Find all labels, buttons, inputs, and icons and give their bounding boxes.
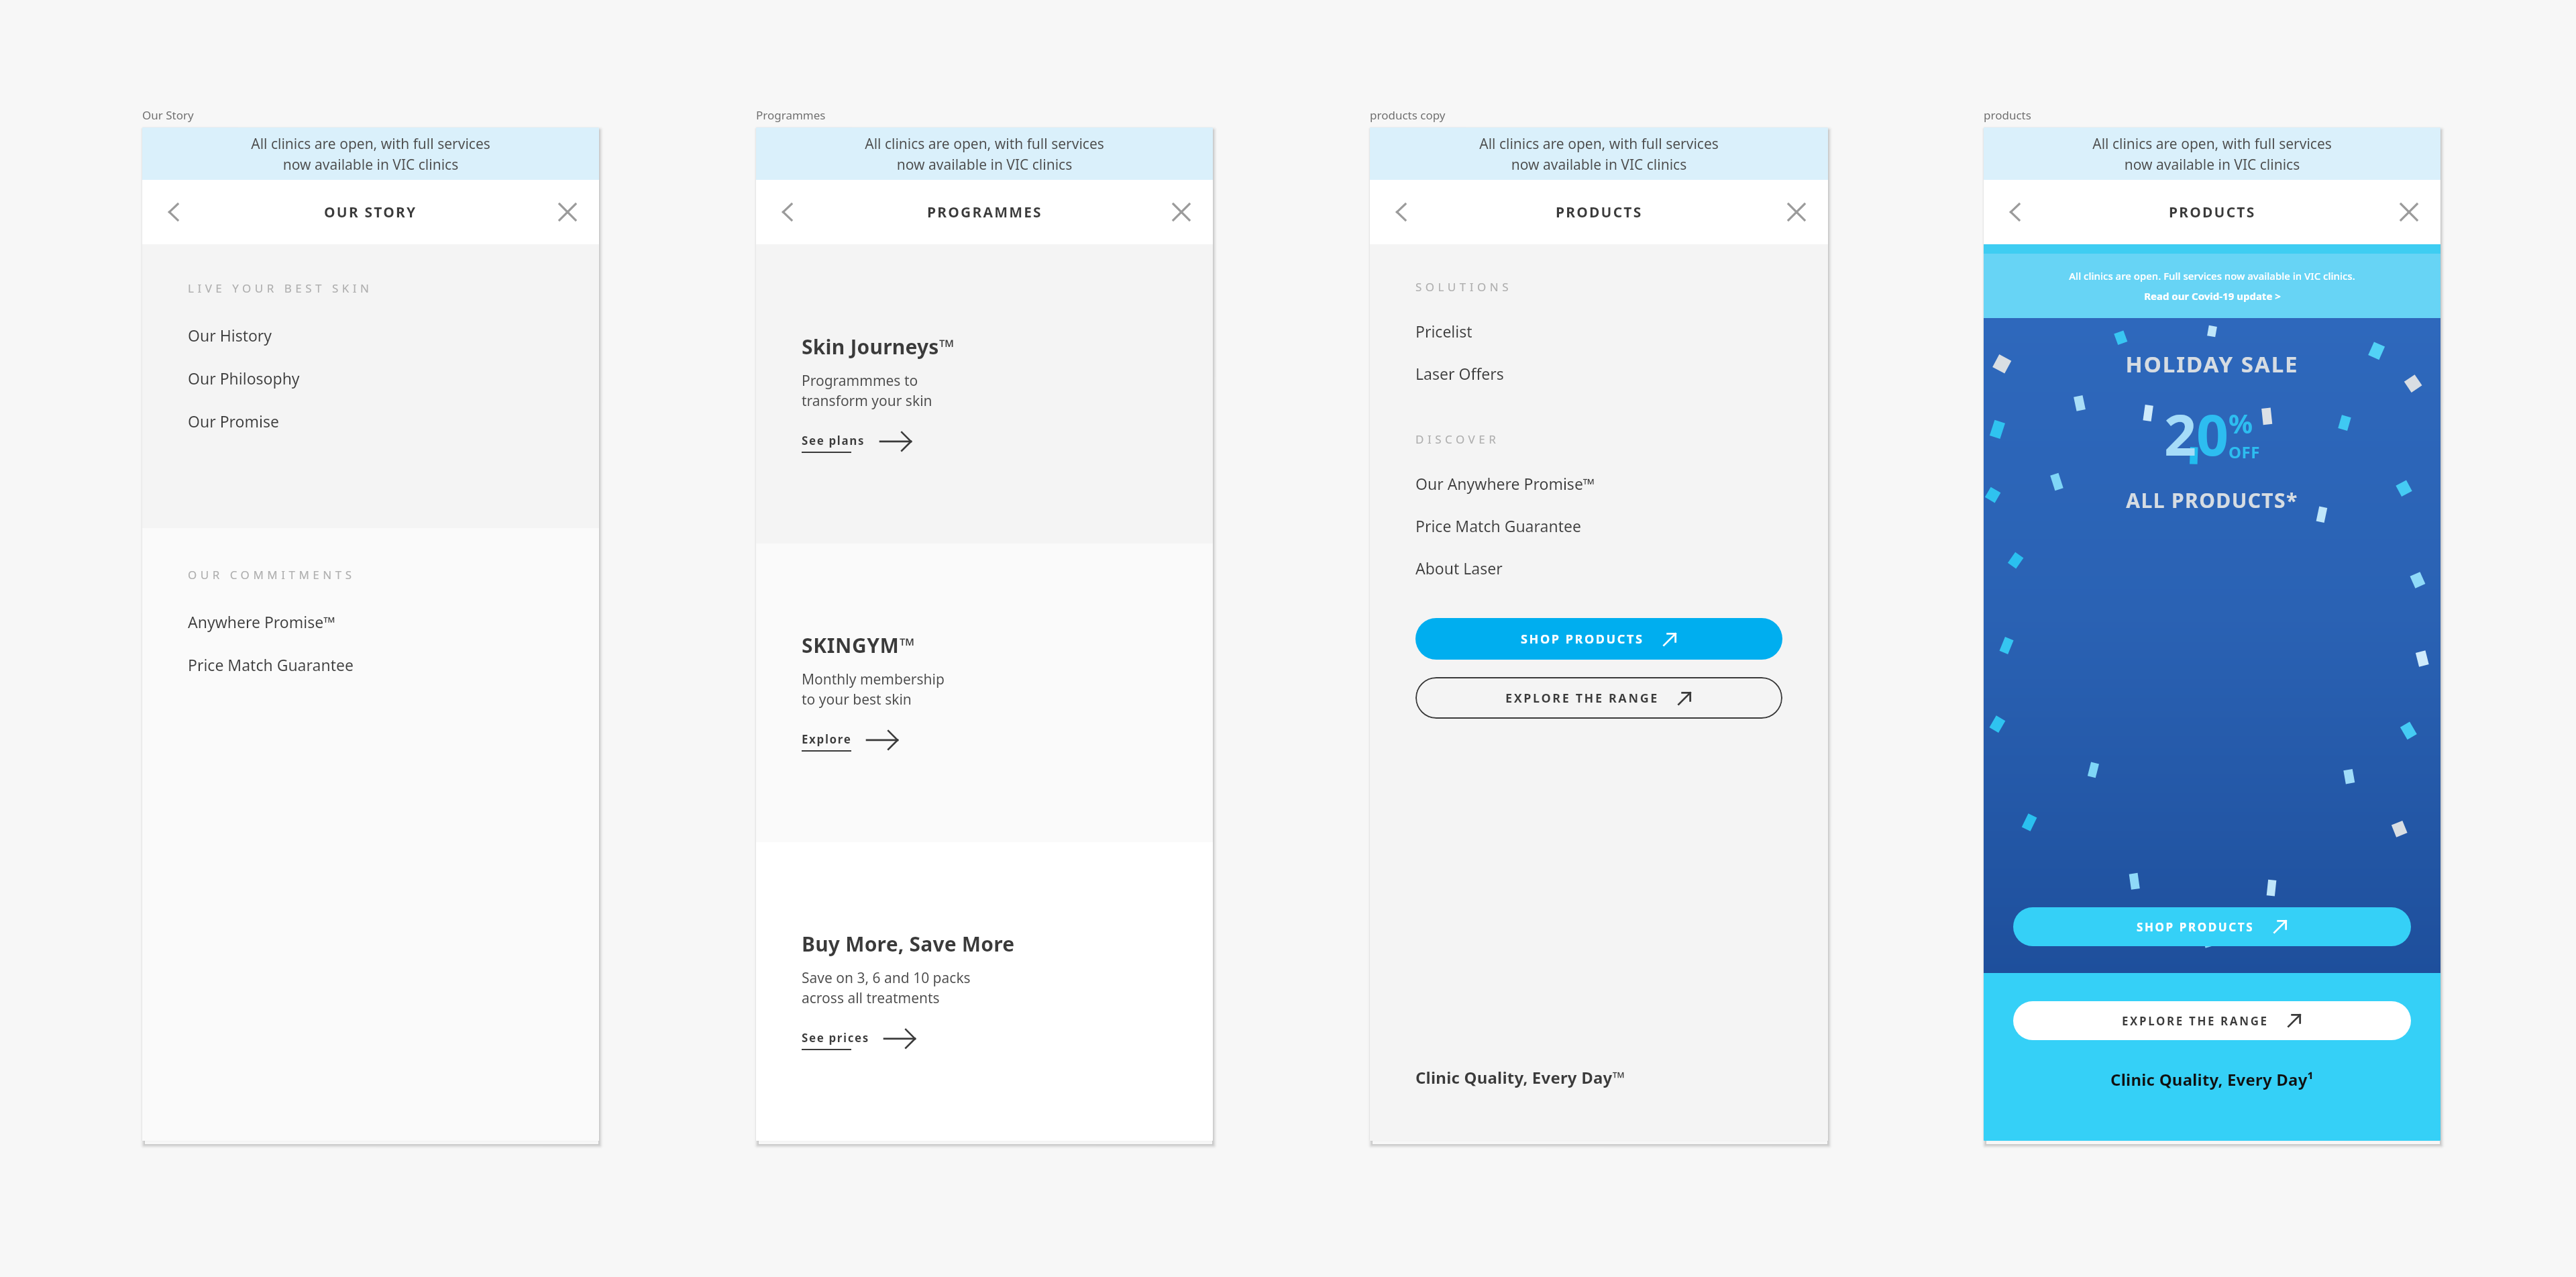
button[interactable]: About Laser [1415,552,1782,584]
staticText: products copy [1370,107,1446,123]
button[interactable]: Our Anywhere Promise™ [1415,467,1782,500]
staticText: Price Match Guarantee [188,654,354,675]
staticText: Clinic Quality, Every Day™ [1415,1066,1625,1088]
staticText: EXPLORE THE RANGE [1505,690,1659,707]
staticText: PROGRAMMES [927,203,1042,222]
button[interactable]: SHOP PRODUCTS [2013,907,2411,946]
staticText: OUR COMMITMENTS [188,567,356,582]
button[interactable]: Anywhere Promise™ [188,605,553,638]
staticText: Our Anywhere Promise™ [1415,473,1595,494]
button[interactable]: Back [156,194,192,230]
staticText: % [2229,405,2253,441]
staticText: Skin Journeys™ [802,333,955,360]
staticText: 0 [2196,395,2229,472]
staticText: EXPLORE THE RANGE [2122,1013,2269,1029]
staticText: 2 [2164,395,2196,472]
button[interactable]: Back [769,194,806,230]
staticText: ALL PRODUCTS* [2126,487,2298,514]
staticText: OFF [2229,441,2261,463]
button[interactable]: Our History [188,319,553,352]
button[interactable]: Our Philosophy [188,362,553,395]
staticText: Programmes [756,107,826,123]
button[interactable]: Our Promise [188,405,553,438]
button[interactable]: Pricelist [1415,315,1782,348]
staticText: SKINGYM™ [802,631,916,659]
button[interactable]: Explore [802,729,898,754]
staticText: See prices [802,1030,869,1045]
staticText: PRODUCTS [1556,203,1643,222]
staticText: Explore [802,731,852,747]
staticText: All clinics are open, with full services… [1479,134,1719,174]
button[interactable]: All clinics are open. Full services now … [1984,254,2440,318]
staticText: Clinic Quality, Every Day¹ [2110,1068,2314,1090]
button[interactable]: Back [1383,194,1419,230]
staticText: All clinics are open. Full services now … [2069,269,2355,283]
staticText: Our Story [142,107,194,123]
staticText: OUR STORY [324,203,417,222]
staticText: DISCOVER [1415,431,1500,447]
button[interactable]: Price Match Guarantee [188,648,553,681]
staticText: Laser Offers [1415,363,1504,384]
staticText: SHOP PRODUCTS [2137,919,2255,935]
button[interactable]: Close [549,194,586,230]
staticText: SHOP PRODUCTS [1521,631,1644,648]
button[interactable]: SHOP PRODUCTS [1415,618,1782,660]
staticText: Our Philosophy [188,368,300,389]
staticText: Anywhere Promise™ [188,611,335,632]
staticText: LIVE YOUR BEST SKIN [188,280,373,296]
button[interactable]: Back [1997,194,2033,230]
button[interactable]: Close [1778,194,1815,230]
staticText: products [1984,107,2031,123]
staticText: SOLUTIONS [1415,279,1513,295]
button[interactable]: See plans [802,430,911,456]
button[interactable]: See prices [802,1027,915,1053]
staticText: All clinics are open, with full services… [251,134,490,174]
staticText: Buy More, Save More [802,930,1015,958]
staticText: All clinics are open, with full services… [865,134,1104,174]
staticText: See plans [802,433,865,448]
button[interactable]: Laser Offers [1415,357,1782,390]
staticText: Monthly membership to your best skin [802,670,945,709]
button[interactable]: Close [1163,194,1199,230]
staticText: Programmmes to transform your skin [802,371,932,410]
button[interactable]: Close [2391,194,2427,230]
staticText: Our History [188,325,272,346]
button[interactable]: EXPLORE THE RANGE [1415,677,1782,719]
staticText: Price Match Guarantee [1415,515,1581,536]
button[interactable]: EXPLORE THE RANGE [2013,1001,2411,1040]
staticText: Pricelist [1415,321,1472,342]
staticText: Read our Covid-19 update > [2144,289,2281,303]
staticText: Save on 3, 6 and 10 packs across all tre… [802,968,971,1007]
staticText: Our Promise [188,411,279,431]
staticText: About Laser [1415,558,1503,578]
staticText: PRODUCTS [2169,203,2256,222]
staticText: All clinics are open, with full services… [2092,134,2332,174]
button[interactable]: Price Match Guarantee [1415,509,1782,542]
staticText: HOLIDAY SALE [2125,349,2299,379]
